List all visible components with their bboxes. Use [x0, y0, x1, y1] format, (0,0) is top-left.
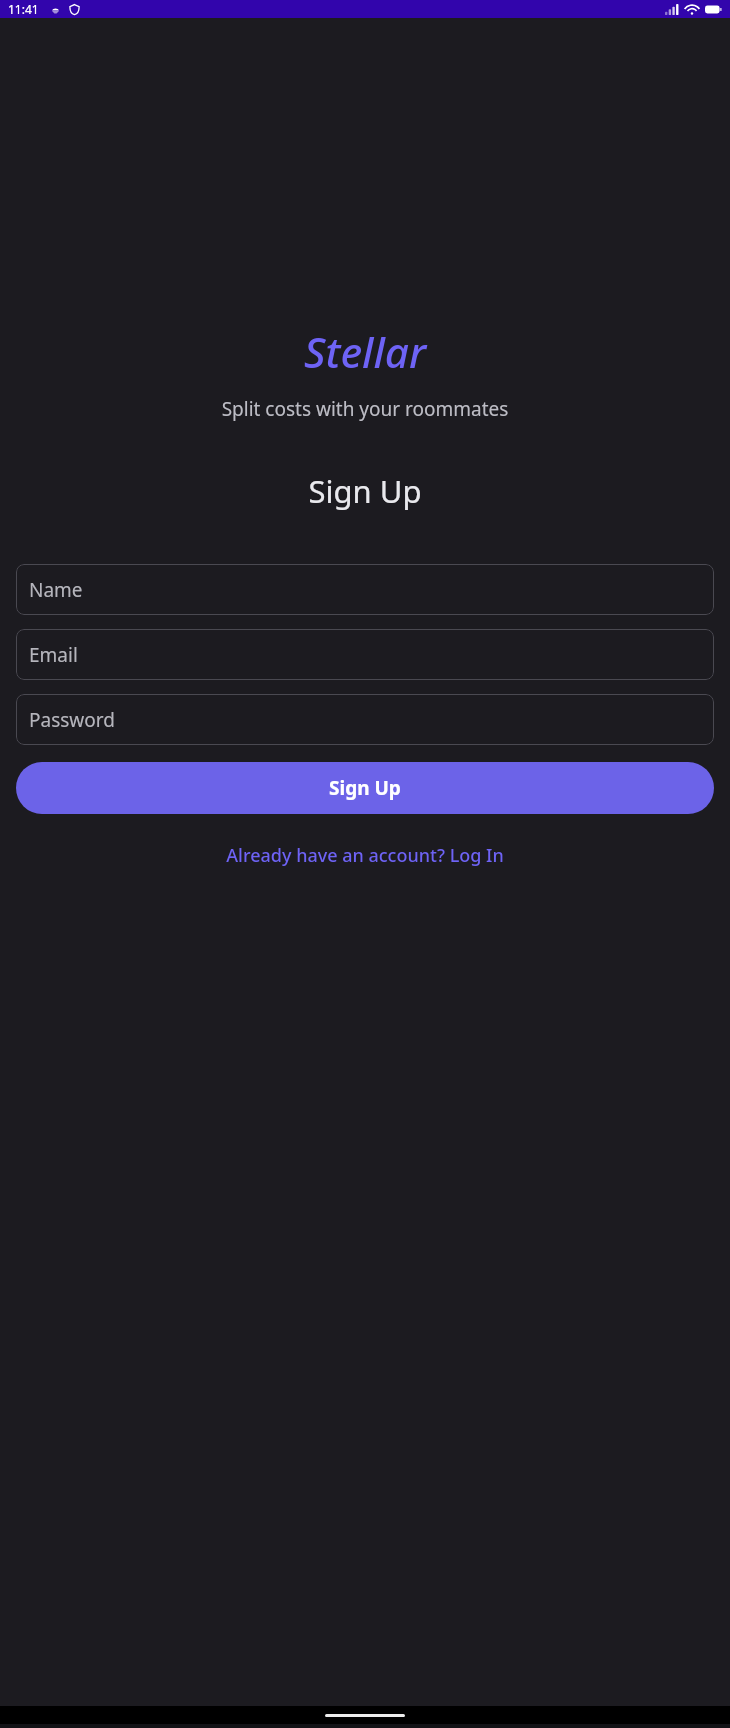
button[interactable]: Already have an account? Log In	[16, 835, 714, 876]
button[interactable]: Name	[16, 564, 714, 615]
button[interactable]: Password	[16, 694, 714, 745]
staticText: Stellar	[0, 323, 730, 380]
staticText: Already have an account? Log In	[226, 843, 504, 868]
staticText: Sign Up	[0, 470, 730, 512]
staticText: Sign Up	[329, 775, 401, 801]
button[interactable]: Sign Up	[16, 762, 714, 814]
button[interactable]: Email	[16, 629, 714, 680]
staticText: Email	[29, 642, 78, 668]
staticText: 11:41	[8, 1, 39, 17]
staticText: Password	[29, 707, 115, 733]
staticText: Name	[29, 577, 83, 603]
staticText: Split costs with your roommates	[0, 396, 730, 422]
